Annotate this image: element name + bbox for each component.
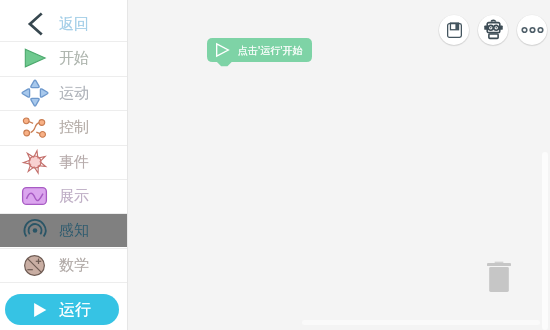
staticText: 感知 bbox=[59, 221, 89, 240]
button[interactable]: 控制 bbox=[0, 110, 128, 144]
button[interactable]: Save bbox=[438, 14, 470, 46]
staticText: 数学 bbox=[59, 256, 89, 275]
staticText: 控制 bbox=[59, 118, 89, 137]
staticText: 展示 bbox=[59, 187, 89, 206]
button[interactable]: 开始 bbox=[0, 41, 128, 75]
button[interactable]: 运行 bbox=[5, 294, 119, 325]
button[interactable]: 感知 bbox=[0, 213, 128, 247]
button[interactable]: 返回 bbox=[0, 7, 128, 41]
button[interactable]: 展示 bbox=[0, 179, 128, 213]
button[interactable]: 点击'运行'开始 bbox=[207, 38, 312, 66]
button[interactable]: Delete bbox=[487, 261, 511, 293]
button[interactable]: 事件 bbox=[0, 145, 128, 179]
button[interactable]: More bbox=[516, 14, 548, 46]
staticText: 运动 bbox=[59, 84, 89, 103]
staticText: 事件 bbox=[59, 153, 89, 172]
staticText: 开始 bbox=[59, 49, 89, 68]
button[interactable]: 数学 bbox=[0, 248, 128, 282]
button[interactable]: Robot bbox=[477, 14, 509, 46]
staticText: 返回 bbox=[59, 15, 89, 34]
staticText: 运行 bbox=[59, 300, 91, 320]
button[interactable]: 运动 bbox=[0, 76, 128, 110]
staticText: 点击'运行'开始 bbox=[238, 43, 303, 57]
